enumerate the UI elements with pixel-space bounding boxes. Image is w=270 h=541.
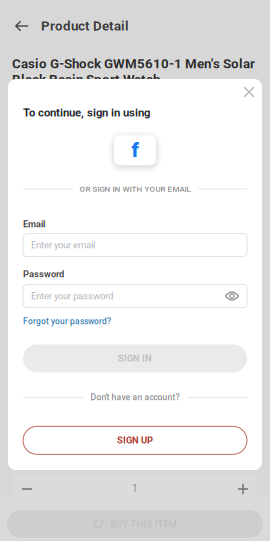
button[interactable]: Back [11, 13, 33, 39]
staticText: To continue, sign in using [23, 106, 150, 119]
staticText: Password [23, 269, 64, 279]
button[interactable]: SIGN UP [23, 426, 247, 454]
staticText: Casio G-Shock GWM5610-1 Men's Solar Blac… [12, 56, 255, 87]
staticText: Enter your password [31, 290, 113, 302]
staticText: Forgot your password? [23, 316, 111, 326]
button[interactable]: Forgot your password? [23, 316, 111, 326]
staticText: Email [23, 219, 45, 230]
button[interactable]: Increase quantity [229, 475, 257, 497]
staticText: SIGN UP [117, 435, 153, 446]
staticText: Don't have an account? [90, 392, 179, 402]
staticText: 1 [132, 483, 138, 494]
staticText: Enter your email [31, 239, 95, 251]
button[interactable]: Close [237, 80, 261, 104]
staticText: BUY THIS ITEM [110, 518, 176, 529]
button[interactable]: BUY THIS ITEM [0, 497, 270, 541]
button[interactable]: SIGN IN [23, 344, 247, 372]
button[interactable]: Decrease quantity [13, 475, 41, 497]
button[interactable]: Sign in with Facebook [114, 135, 156, 165]
staticText: SIGN IN [118, 353, 152, 364]
staticText: OR SIGN IN WITH YOUR EMAIL [79, 184, 190, 194]
staticText: Product Detail [41, 18, 129, 34]
staticText: f [131, 139, 138, 162]
